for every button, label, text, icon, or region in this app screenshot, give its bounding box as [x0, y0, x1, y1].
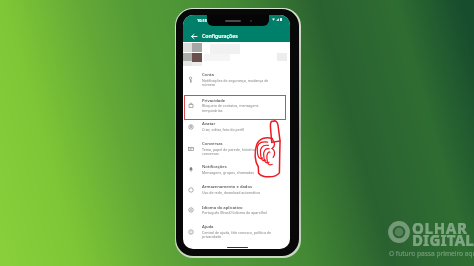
- staticText: Mensagens, grupos, chamadas: [202, 170, 254, 175]
- button[interactable]: [183, 218, 290, 245]
- staticText: Conversas: [202, 141, 223, 147]
- staticText: Tema, papel de parede, histórico: [202, 147, 257, 152]
- staticText: conversas: [202, 151, 219, 156]
- staticText: Conta: [202, 72, 214, 78]
- button[interactable]: [183, 92, 290, 119]
- staticText: Armazenamento e dados: [202, 184, 252, 190]
- staticText: Avatar: [202, 121, 216, 127]
- staticText: Português (Brasil) (idioma do aparelho): [202, 210, 268, 215]
- staticText: Privacidade: [202, 98, 226, 104]
- staticText: Notificações de segurança, mudança de: [202, 78, 269, 83]
- button[interactable]: [183, 66, 290, 93]
- staticText: OLHAR: [412, 218, 468, 238]
- button[interactable]: [183, 135, 290, 162]
- staticText: número: [202, 82, 216, 87]
- button[interactable]: Back: [188, 30, 200, 42]
- staticText: Central de ajuda, fale conosco, política…: [202, 230, 271, 235]
- staticText: Uso de rede, download automático: [202, 190, 261, 195]
- staticText: O futuro passa primeiro aqui.: [389, 249, 474, 258]
- staticText: Configurações: [202, 32, 238, 39]
- staticText: Idioma do aplicativo: [202, 205, 243, 211]
- staticText: DIGITAL: [412, 230, 474, 250]
- button[interactable]: [183, 178, 290, 201]
- button[interactable]: [183, 158, 290, 181]
- staticText: privacidade: [202, 234, 222, 239]
- button[interactable]: [183, 199, 290, 222]
- staticText: 10:15: [197, 18, 207, 23]
- button[interactable]: [183, 115, 290, 138]
- staticText: Criar, editar, foto do perfil: [202, 127, 245, 132]
- staticText: Bloqueio de contatos, mensagens: [202, 103, 259, 108]
- staticText: temporárias: [202, 108, 223, 113]
- staticText: Notificações: [202, 164, 227, 170]
- staticText: Ajuda: [202, 224, 214, 230]
